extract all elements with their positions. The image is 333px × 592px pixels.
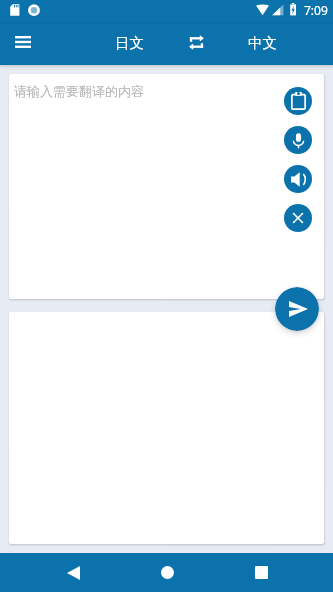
button[interactable]: Swap languages <box>178 24 214 60</box>
button[interactable]: Speak <box>284 165 312 193</box>
button[interactable]: Clear <box>284 204 312 232</box>
button[interactable]: Back <box>47 553 95 592</box>
button[interactable]: 中文 <box>242 25 282 61</box>
button[interactable]: Voice input <box>284 126 312 154</box>
button[interactable]: Paste <box>284 87 312 115</box>
button[interactable]: Recents <box>238 553 286 592</box>
staticText: 请输入需要翻译的内容 <box>14 83 144 99</box>
button[interactable]: Menu <box>2 24 43 65</box>
button[interactable]: Home <box>143 553 191 592</box>
staticText: 日文 <box>115 34 144 52</box>
staticText: 7:09 <box>304 2 328 18</box>
button[interactable]: 日文 <box>109 25 149 61</box>
staticText: 中文 <box>248 34 277 52</box>
button[interactable]: Translate <box>275 287 319 331</box>
